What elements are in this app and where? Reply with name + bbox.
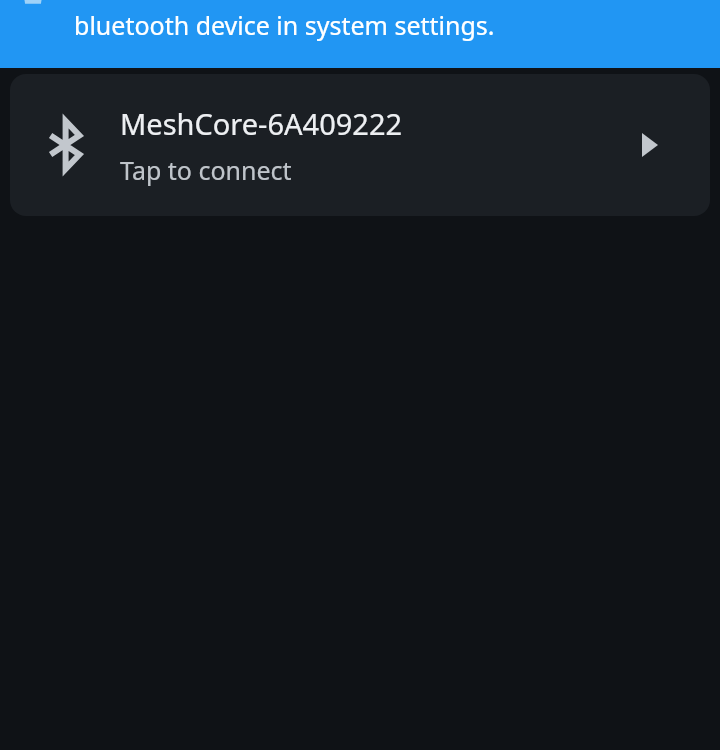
- staticText: Tap to connect: [120, 153, 292, 187]
- other: Open device: [642, 133, 658, 157]
- staticText: MeshCore-6A409222: [120, 104, 403, 143]
- staticText: bluetooth device in system settings.: [74, 8, 495, 42]
- button[interactable]: MeshCore-6A409222: [10, 74, 710, 216]
- button[interactable]: bluetooth device in system settings.: [0, 0, 720, 68]
